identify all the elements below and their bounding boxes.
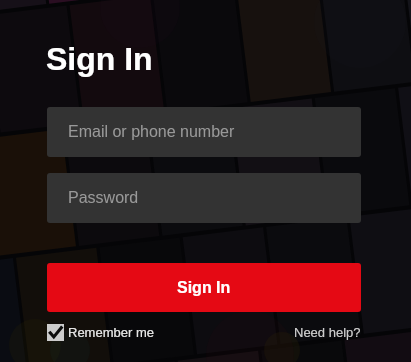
button[interactable]: Remember me (47, 324, 154, 341)
button[interactable]: Sign In (47, 263, 361, 312)
staticText: Sign In (46, 41, 153, 77)
staticText: Password (68, 189, 139, 207)
staticText: Remember me (68, 325, 154, 340)
staticText: Email or phone number (68, 123, 235, 141)
button[interactable]: Password (47, 173, 361, 223)
button[interactable]: Email or phone number (47, 107, 361, 157)
button[interactable]: Need help? (294, 325, 361, 340)
staticText: Sign In (177, 279, 231, 297)
